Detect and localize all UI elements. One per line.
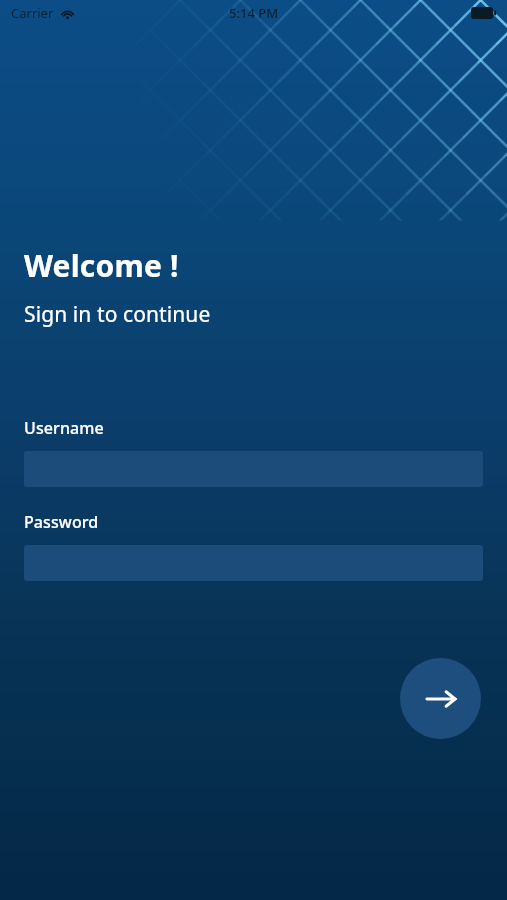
staticText: Welcome ! — [24, 245, 179, 286]
button[interactable]: Sign in — [400, 658, 481, 739]
staticText: Username — [24, 417, 104, 439]
staticText: 5:14 PM — [229, 4, 279, 22]
staticText: Password — [24, 511, 99, 533]
staticText: Sign in to continue — [24, 300, 211, 329]
staticText: Carrier — [11, 4, 54, 22]
